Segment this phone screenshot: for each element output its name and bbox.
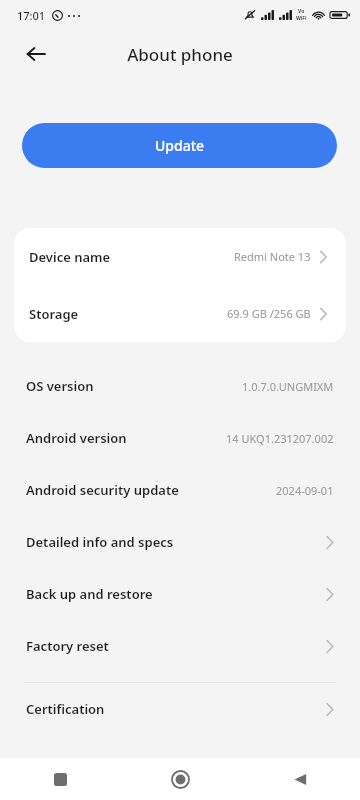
button[interactable]: Update	[22, 123, 337, 168]
button[interactable]: OS version	[0, 360, 360, 412]
staticText: Detailed info and specs	[26, 533, 174, 551]
button[interactable]: Android version	[0, 412, 360, 464]
staticText: About phone	[127, 43, 233, 66]
button[interactable]: Recents	[0, 758, 120, 800]
staticText: Storage	[29, 305, 79, 323]
staticText: Device name	[29, 248, 111, 266]
staticText: WiFi	[296, 15, 307, 22]
staticText: Redmi Note 13	[234, 249, 311, 264]
staticText: 1.0.7.0.UNGMIXM	[242, 379, 334, 394]
staticText: Factory reset	[26, 637, 109, 655]
staticText: 69.9 GB /256 GB	[227, 306, 311, 321]
staticText: Android version	[26, 429, 127, 447]
staticText: 17:01	[17, 8, 46, 23]
staticText: 2024-09-01	[276, 483, 334, 498]
staticText: Update	[155, 136, 205, 155]
button[interactable]: Detailed info and specs	[0, 516, 360, 568]
staticText: Vo	[298, 8, 305, 15]
staticText: Back up and restore	[26, 585, 153, 603]
button[interactable]: Back	[16, 34, 56, 74]
staticText: Certification	[26, 700, 105, 718]
staticText: OS version	[26, 377, 94, 395]
button[interactable]: Back	[240, 758, 360, 800]
button[interactable]: Android security update	[0, 464, 360, 516]
button[interactable]: Home	[120, 758, 240, 800]
staticText: Android security update	[26, 481, 179, 499]
button[interactable]: Certification	[0, 683, 360, 735]
button[interactable]: Factory reset	[0, 620, 360, 672]
button[interactable]: Back up and restore	[0, 568, 360, 620]
button[interactable]: Storage	[14, 285, 346, 342]
staticText: 14 UKQ1.231207.002	[226, 431, 334, 446]
button[interactable]: Device name	[14, 228, 346, 285]
